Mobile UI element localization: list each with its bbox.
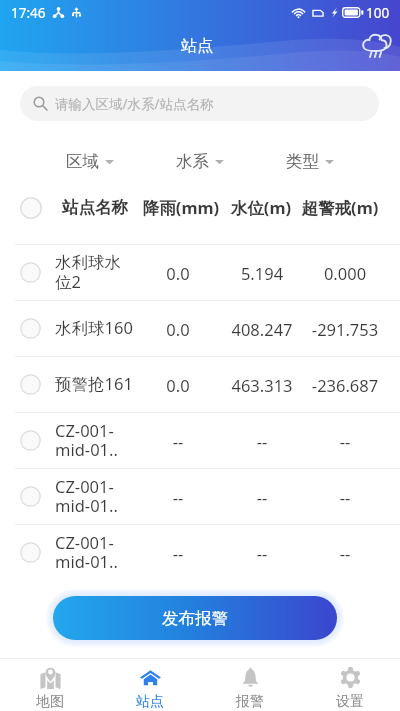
button[interactable]: 区域 xyxy=(35,141,145,181)
button[interactable]: 类型 xyxy=(255,141,365,181)
staticText: -236.687 xyxy=(295,374,395,396)
staticText: 水利球160 xyxy=(55,316,150,339)
staticText: 站点 xyxy=(181,36,213,56)
staticText: -- xyxy=(222,486,302,508)
button[interactable]: CZ-001- mid-01.. xyxy=(0,469,400,525)
staticText: 水利球水 位2 xyxy=(55,252,150,292)
button[interactable]: 发布报警 xyxy=(53,596,337,640)
button[interactable]: 报警 xyxy=(200,659,300,711)
staticText: CZ-001- mid-01.. xyxy=(55,419,150,460)
button[interactable]: Weather xyxy=(361,32,391,57)
button[interactable]: CZ-001- mid-01.. xyxy=(0,525,400,580)
staticText: 5.194 xyxy=(222,262,302,284)
staticText: -291.753 xyxy=(295,318,395,340)
staticText: 类型 xyxy=(286,151,319,172)
button[interactable]: 预警抢161 xyxy=(0,357,400,413)
staticText: -- xyxy=(295,542,395,564)
staticText: 0.0 xyxy=(133,318,223,340)
staticText: 水位(m) xyxy=(221,196,301,219)
staticText: 0.0 xyxy=(133,374,223,396)
staticText: 发布报警 xyxy=(162,608,228,629)
staticText: 预警抢161 xyxy=(55,372,150,395)
button[interactable]: CZ-001- mid-01.. xyxy=(0,413,400,469)
staticText: 区域 xyxy=(66,151,99,172)
staticText: 463.313 xyxy=(222,374,302,396)
staticText: 报警 xyxy=(236,693,264,711)
staticText: -- xyxy=(133,430,223,452)
staticText: 设置 xyxy=(336,693,364,711)
staticText: 站点 xyxy=(136,693,164,711)
button[interactable]: 站点 xyxy=(100,659,200,711)
staticText: -- xyxy=(133,542,223,564)
staticText: 站点名称 xyxy=(62,197,128,218)
staticText: 请输入区域/水系/站点名称 xyxy=(55,95,214,113)
staticText: 降雨(mm) xyxy=(136,196,226,219)
staticText: 0.000 xyxy=(295,262,395,284)
staticText: 超警戒(m) xyxy=(290,196,390,219)
button[interactable]: 地图 xyxy=(0,659,100,711)
button[interactable]: 水利球160 xyxy=(0,301,400,357)
staticText: -- xyxy=(222,542,302,564)
staticText: 水系 xyxy=(176,151,209,172)
staticText: 地图 xyxy=(36,693,64,711)
button[interactable]: 水系 xyxy=(145,141,255,181)
button[interactable]: 水利球水 位2 xyxy=(0,245,400,301)
staticText: -- xyxy=(133,486,223,508)
button[interactable]: 设置 xyxy=(300,659,400,711)
staticText: -- xyxy=(295,430,395,452)
staticText: 17:46 xyxy=(11,4,46,22)
staticText: CZ-001- mid-01.. xyxy=(55,531,150,572)
staticText: 100 xyxy=(366,4,390,22)
staticText: -- xyxy=(222,430,302,452)
button[interactable]: 请输入区域/水系/站点名称 xyxy=(20,86,379,121)
staticText: 0.0 xyxy=(133,262,223,284)
staticText: 408.247 xyxy=(222,318,302,340)
staticText: -- xyxy=(295,486,395,508)
staticText: CZ-001- mid-01.. xyxy=(55,475,150,516)
